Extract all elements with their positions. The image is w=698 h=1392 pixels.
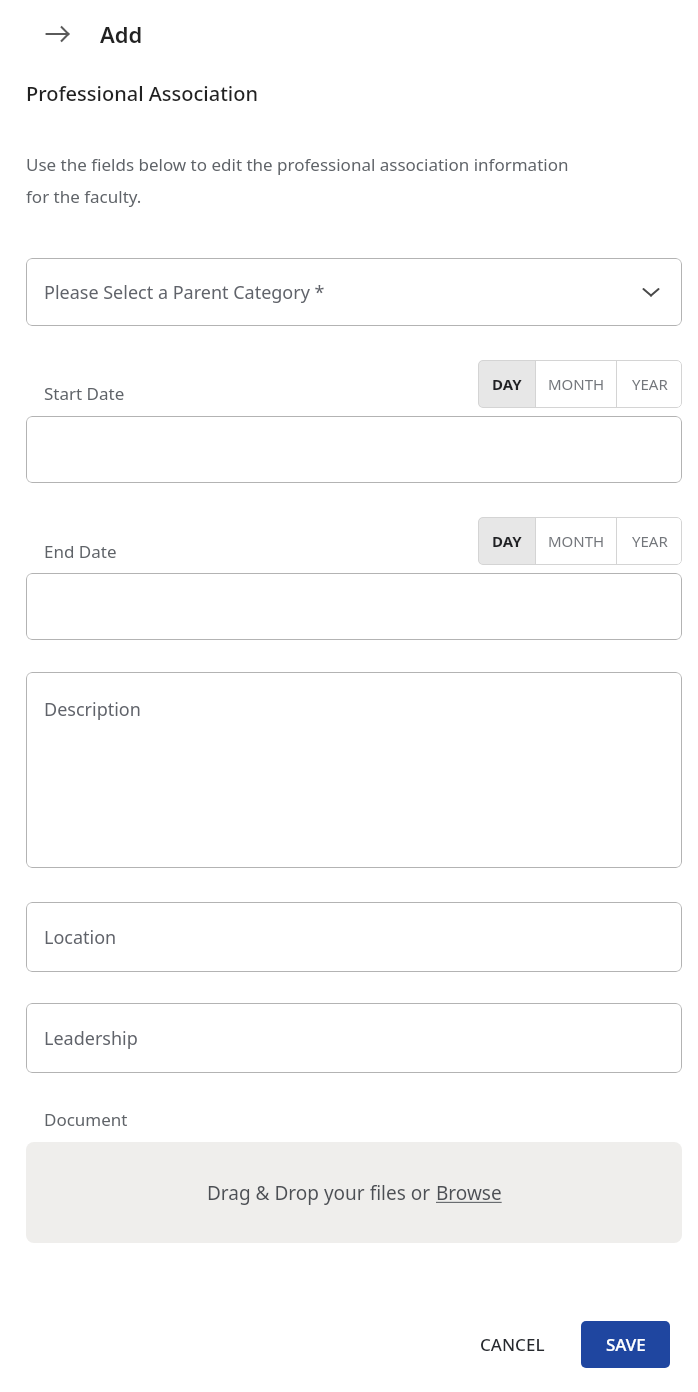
staticText: Start Date [44,382,125,405]
staticText: Browse [436,1180,502,1206]
staticText: MONTH [548,374,605,394]
staticText: Location [44,925,117,950]
staticText: MONTH [548,531,605,551]
button[interactable] [26,573,682,640]
button[interactable]: DAY [478,517,535,565]
staticText: End Date [44,540,117,563]
staticText: Use the fields below to edit the profess… [26,153,588,208]
button[interactable]: DAY [478,360,535,408]
button[interactable]: SAVE [581,1321,670,1368]
staticText: Add [100,19,143,49]
staticText: Document [44,1108,128,1131]
button[interactable]: Please Select a Parent Category * [26,258,682,326]
staticText: Drag & Drop your files or [207,1180,436,1206]
staticText: Please Select a Parent Category * [44,280,325,305]
staticText: Professional Association [26,80,258,107]
button[interactable]: YEAR [617,360,682,408]
button[interactable]: MONTH [536,360,616,408]
staticText: Description [44,697,141,722]
button[interactable]: YEAR [617,517,682,565]
staticText: CANCEL [480,1333,545,1356]
staticText: YEAR [632,531,668,551]
button[interactable]: Location [26,902,682,972]
button[interactable]: Drag & Drop your files or [26,1142,682,1243]
button[interactable]: Navigate forward [34,14,80,54]
staticText: Leadership [44,1026,138,1051]
button[interactable]: MONTH [536,517,616,565]
staticText: YEAR [632,374,668,394]
staticText: DAY [492,374,522,394]
staticText: DAY [492,531,522,551]
staticText: SAVE [606,1333,646,1356]
button[interactable] [26,416,682,483]
button[interactable]: Leadership [26,1003,682,1073]
button[interactable]: Description [26,672,682,868]
button[interactable]: CANCEL [452,1319,572,1369]
